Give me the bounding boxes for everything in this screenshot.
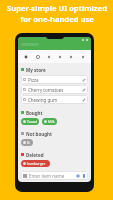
button[interactable]: Toolbar action xyxy=(80,54,86,60)
button[interactable]: Toolbar action xyxy=(23,54,29,60)
staticText: Pizza xyxy=(28,77,39,83)
button[interactable]: hamburger buns xyxy=(21,160,50,167)
button[interactable]: Menu xyxy=(21,171,88,180)
button[interactable]: Milk xyxy=(42,118,57,125)
button[interactable]: Voice input xyxy=(82,174,86,178)
staticText: Deleted xyxy=(26,152,44,158)
button[interactable]: Pizza xyxy=(21,75,88,84)
staticText: Milk xyxy=(48,119,55,124)
button[interactable]: Cherry tomatoes xyxy=(21,85,88,94)
staticText: Not bought xyxy=(26,131,52,137)
staticText: for one-handed use xyxy=(20,14,94,24)
staticText: Tomatoes xyxy=(27,119,37,124)
staticText: Chewing gum xyxy=(28,97,58,103)
button[interactable]: Tomatoes xyxy=(21,118,39,125)
button[interactable]: Gum xyxy=(21,139,33,146)
staticText: Enter item name xyxy=(29,173,65,179)
button[interactable]: Chewing gum xyxy=(21,95,88,104)
staticText: Super-simple UI optimized xyxy=(7,3,107,13)
button[interactable]: Toolbar action xyxy=(57,54,63,60)
staticText: Bought xyxy=(26,110,43,116)
staticText: Cherry tomatoes xyxy=(28,87,64,93)
staticText: My store xyxy=(26,67,46,73)
button[interactable]: Toolbar action xyxy=(68,54,74,60)
button[interactable]: Add item xyxy=(76,174,80,178)
staticText: Gum xyxy=(27,140,31,145)
button[interactable]: Toolbar action xyxy=(35,54,41,60)
button[interactable]: Toolbar action xyxy=(46,54,52,60)
staticText: hamburger buns xyxy=(27,161,48,166)
